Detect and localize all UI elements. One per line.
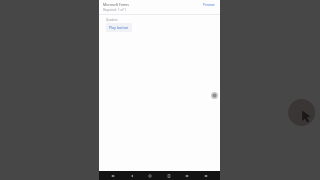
other: Pointer [289, 99, 319, 129]
button[interactable]: Volume [183, 172, 191, 180]
button[interactable]: Recents [109, 172, 117, 180]
staticText: Question [106, 18, 118, 22]
button[interactable]: Back [128, 172, 136, 180]
staticText: Required · 1 of 1 [103, 8, 126, 12]
button[interactable]: Preview [202, 2, 216, 8]
staticText: This content is created by the owner of … [130, 171, 189, 175]
staticText: Microsoft Forms [103, 2, 129, 7]
staticText: Play button [109, 25, 129, 30]
button[interactable]: Scroll handle [211, 92, 218, 99]
button[interactable]: Home [146, 172, 154, 180]
button[interactable]: Overview [165, 172, 173, 180]
staticText: Preview [203, 3, 215, 7]
button[interactable]: Play button [106, 23, 132, 32]
button[interactable]: More [202, 172, 210, 180]
